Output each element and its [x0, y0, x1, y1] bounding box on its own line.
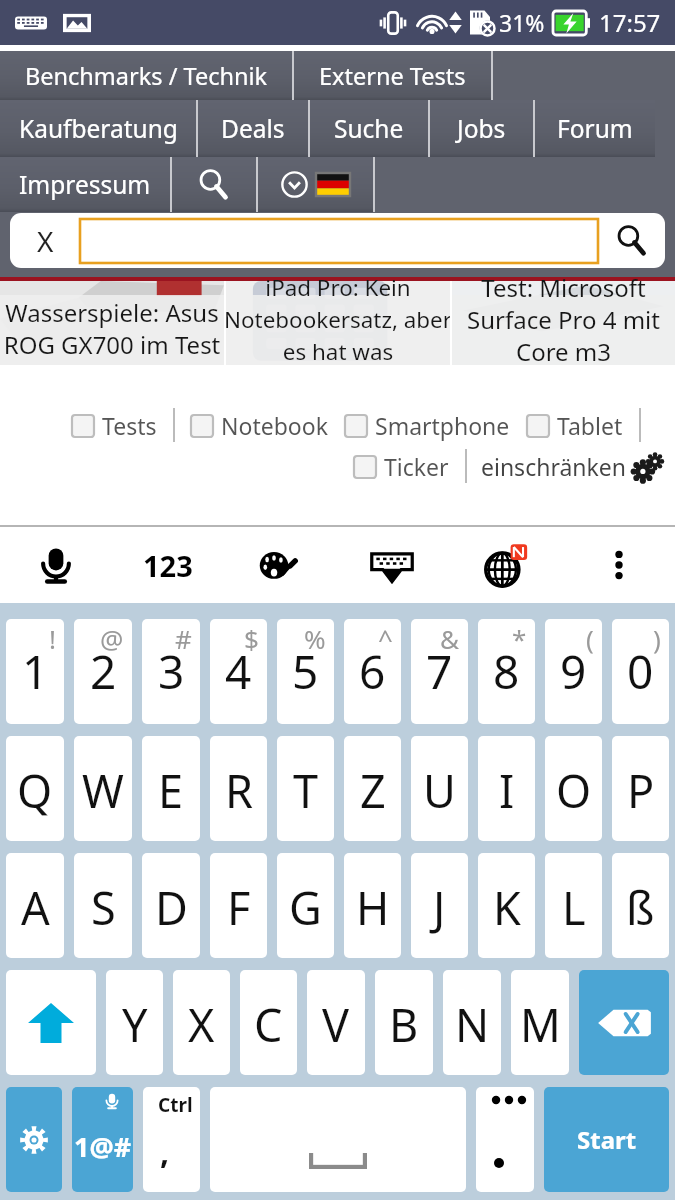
button[interactable]: Numbers: [112, 527, 224, 603]
button[interactable]: Language: [448, 527, 564, 603]
staticText: iPad Pro: Kein Notebookersatz, aber es h…: [209, 272, 467, 367]
button[interactable]: O: [545, 736, 602, 841]
staticText: 7: [426, 640, 453, 703]
button[interactable]: Backspace: [579, 970, 669, 1075]
button[interactable]: Q: [6, 736, 64, 841]
button[interactable]: Jobs: [430, 100, 533, 157]
button[interactable]: Theme: [224, 527, 336, 603]
staticText: G: [289, 877, 322, 938]
button[interactable]: 2: [74, 619, 132, 724]
button[interactable]: W: [74, 736, 132, 841]
button[interactable]: 7: [411, 619, 468, 724]
staticText: #: [175, 621, 192, 656]
button[interactable]: 5: [277, 619, 334, 724]
button[interactable]: K: [478, 853, 535, 958]
button[interactable]: 9: [545, 619, 602, 724]
button[interactable]: Benchmarks / Technik: [0, 51, 292, 100]
button[interactable]: 1: [6, 619, 64, 724]
staticText: Y: [122, 994, 148, 1055]
button[interactable]: [226, 281, 450, 365]
button[interactable]: Impressum: [0, 157, 170, 212]
button[interactable]: V: [307, 970, 365, 1075]
staticText: X: [188, 994, 215, 1055]
button[interactable]: Forum: [535, 100, 655, 157]
button[interactable]: Space: [210, 1087, 466, 1192]
staticText: (: [586, 621, 594, 656]
staticText: P: [627, 760, 655, 821]
button[interactable]: E: [142, 736, 200, 841]
button[interactable]: Voice input: [0, 527, 112, 603]
button[interactable]: Language: [258, 157, 373, 212]
button[interactable]: [452, 281, 675, 365]
button[interactable]: Shift: [6, 970, 96, 1075]
button[interactable]: 4: [210, 619, 267, 724]
button[interactable]: Search: [172, 157, 256, 212]
button[interactable]: C: [240, 970, 297, 1075]
staticText: T: [293, 760, 319, 821]
button[interactable]: Y: [106, 970, 163, 1075]
button[interactable]: Tests: [70, 410, 159, 441]
staticText: 6: [359, 640, 386, 703]
button[interactable]: 0: [612, 619, 669, 724]
button[interactable]: 6: [344, 619, 401, 724]
button[interactable]: P: [612, 736, 669, 841]
button[interactable]: M: [511, 970, 569, 1075]
button[interactable]: Start: [544, 1087, 669, 1192]
button[interactable]: ß: [612, 853, 669, 958]
button[interactable]: D: [142, 853, 200, 958]
button[interactable]: T: [277, 736, 334, 841]
button[interactable]: Kaufberatung: [0, 100, 196, 157]
button[interactable]: L: [545, 853, 602, 958]
button[interactable]: S: [74, 853, 132, 958]
staticText: 2: [90, 640, 117, 703]
staticText: F: [227, 877, 251, 938]
button[interactable]: Comma: [143, 1087, 200, 1192]
button[interactable]: N: [443, 970, 501, 1075]
button[interactable]: More: [564, 527, 674, 603]
staticText: 9: [560, 640, 587, 703]
button[interactable]: G: [277, 853, 334, 958]
staticText: &: [440, 621, 460, 656]
button[interactable]: B: [375, 970, 433, 1075]
button[interactable]: F: [210, 853, 267, 958]
button[interactable]: Externe Tests: [294, 51, 491, 100]
staticText: Forum: [557, 112, 633, 145]
button[interactable]: Notebook: [189, 410, 330, 441]
button[interactable]: Z: [344, 736, 401, 841]
button[interactable]: 8: [478, 619, 535, 724]
button[interactable]: Suche: [310, 100, 428, 157]
staticText: $: [244, 621, 259, 656]
button[interactable]: J: [411, 853, 468, 958]
staticText: Ticker: [384, 451, 449, 482]
button[interactable]: Ticker: [352, 451, 451, 482]
staticText: *: [512, 621, 527, 656]
button[interactable]: X: [173, 970, 230, 1075]
staticText: R: [225, 760, 253, 821]
button[interactable]: [0, 281, 224, 365]
button[interactable]: U: [411, 736, 468, 841]
button[interactable]: R: [210, 736, 267, 841]
button[interactable]: H: [344, 853, 401, 958]
button[interactable]: Tablet: [525, 410, 625, 441]
button[interactable]: Deals: [198, 100, 308, 157]
staticText: 31%: [499, 7, 545, 38]
staticText: S: [91, 877, 116, 938]
button[interactable]: Settings: [6, 1087, 62, 1192]
button[interactable]: [80, 219, 598, 263]
button[interactable]: Period: [476, 1087, 534, 1192]
staticText: Kaufberatung: [19, 112, 178, 145]
staticText: L: [562, 877, 586, 938]
button[interactable]: 3: [142, 619, 200, 724]
staticText: einschränken: [481, 451, 627, 482]
button[interactable]: Search: [598, 213, 665, 268]
staticText: Tablet: [557, 410, 623, 441]
button[interactable]: Hide keyboard: [336, 527, 448, 603]
button[interactable]: Smartphone: [343, 410, 512, 441]
button[interactable]: A: [6, 853, 64, 958]
button[interactable]: Symbols: [72, 1087, 133, 1192]
button[interactable]: Clear: [10, 213, 80, 268]
button[interactable]: I: [478, 736, 535, 841]
button[interactable]: einschränken: [481, 451, 664, 482]
staticText: Impressum: [19, 168, 151, 201]
staticText: 17:57: [599, 6, 661, 39]
